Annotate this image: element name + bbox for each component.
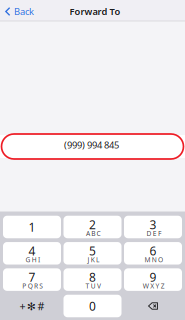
button[interactable]: 6 [124,242,182,265]
button[interactable]: 4 [3,242,61,265]
staticText: DEF [146,229,161,238]
staticText: 0 [89,298,96,314]
staticText: 4 [28,243,35,259]
staticText: MNO [144,255,163,264]
button[interactable]: 8 [63,268,121,291]
staticText: ABC [86,229,101,238]
button[interactable]: 3 [124,216,182,238]
button[interactable]: 9 [124,268,182,291]
staticText: 2 [89,217,96,232]
button[interactable]: +✻# [3,295,61,317]
staticText: 1 [28,219,35,235]
staticText: 9 [149,269,156,285]
button[interactable]: 2 [63,216,121,238]
button[interactable]: 1 [3,216,61,238]
staticText: 5 [89,243,96,259]
button[interactable]: 5 [63,242,121,265]
staticText: (999) 994 845 [64,139,119,151]
staticText: Back [14,5,34,18]
staticText: 6 [149,243,156,259]
staticText: Forward To [69,5,120,18]
staticText: GHI [25,255,40,264]
staticText: 8 [89,269,96,285]
staticText: 3 [149,217,156,232]
staticText: JKL [87,255,99,264]
button[interactable]: 0 [63,295,121,317]
button[interactable]: 7 [3,268,61,291]
staticText: WXYZ [143,281,165,290]
button[interactable]: Back [0,1,39,22]
staticText: 7 [28,269,35,285]
staticText: TUV [85,281,101,290]
staticText: PQRS [22,281,43,290]
staticText: +✻# [19,299,45,313]
button[interactable]: Delete [124,295,182,317]
